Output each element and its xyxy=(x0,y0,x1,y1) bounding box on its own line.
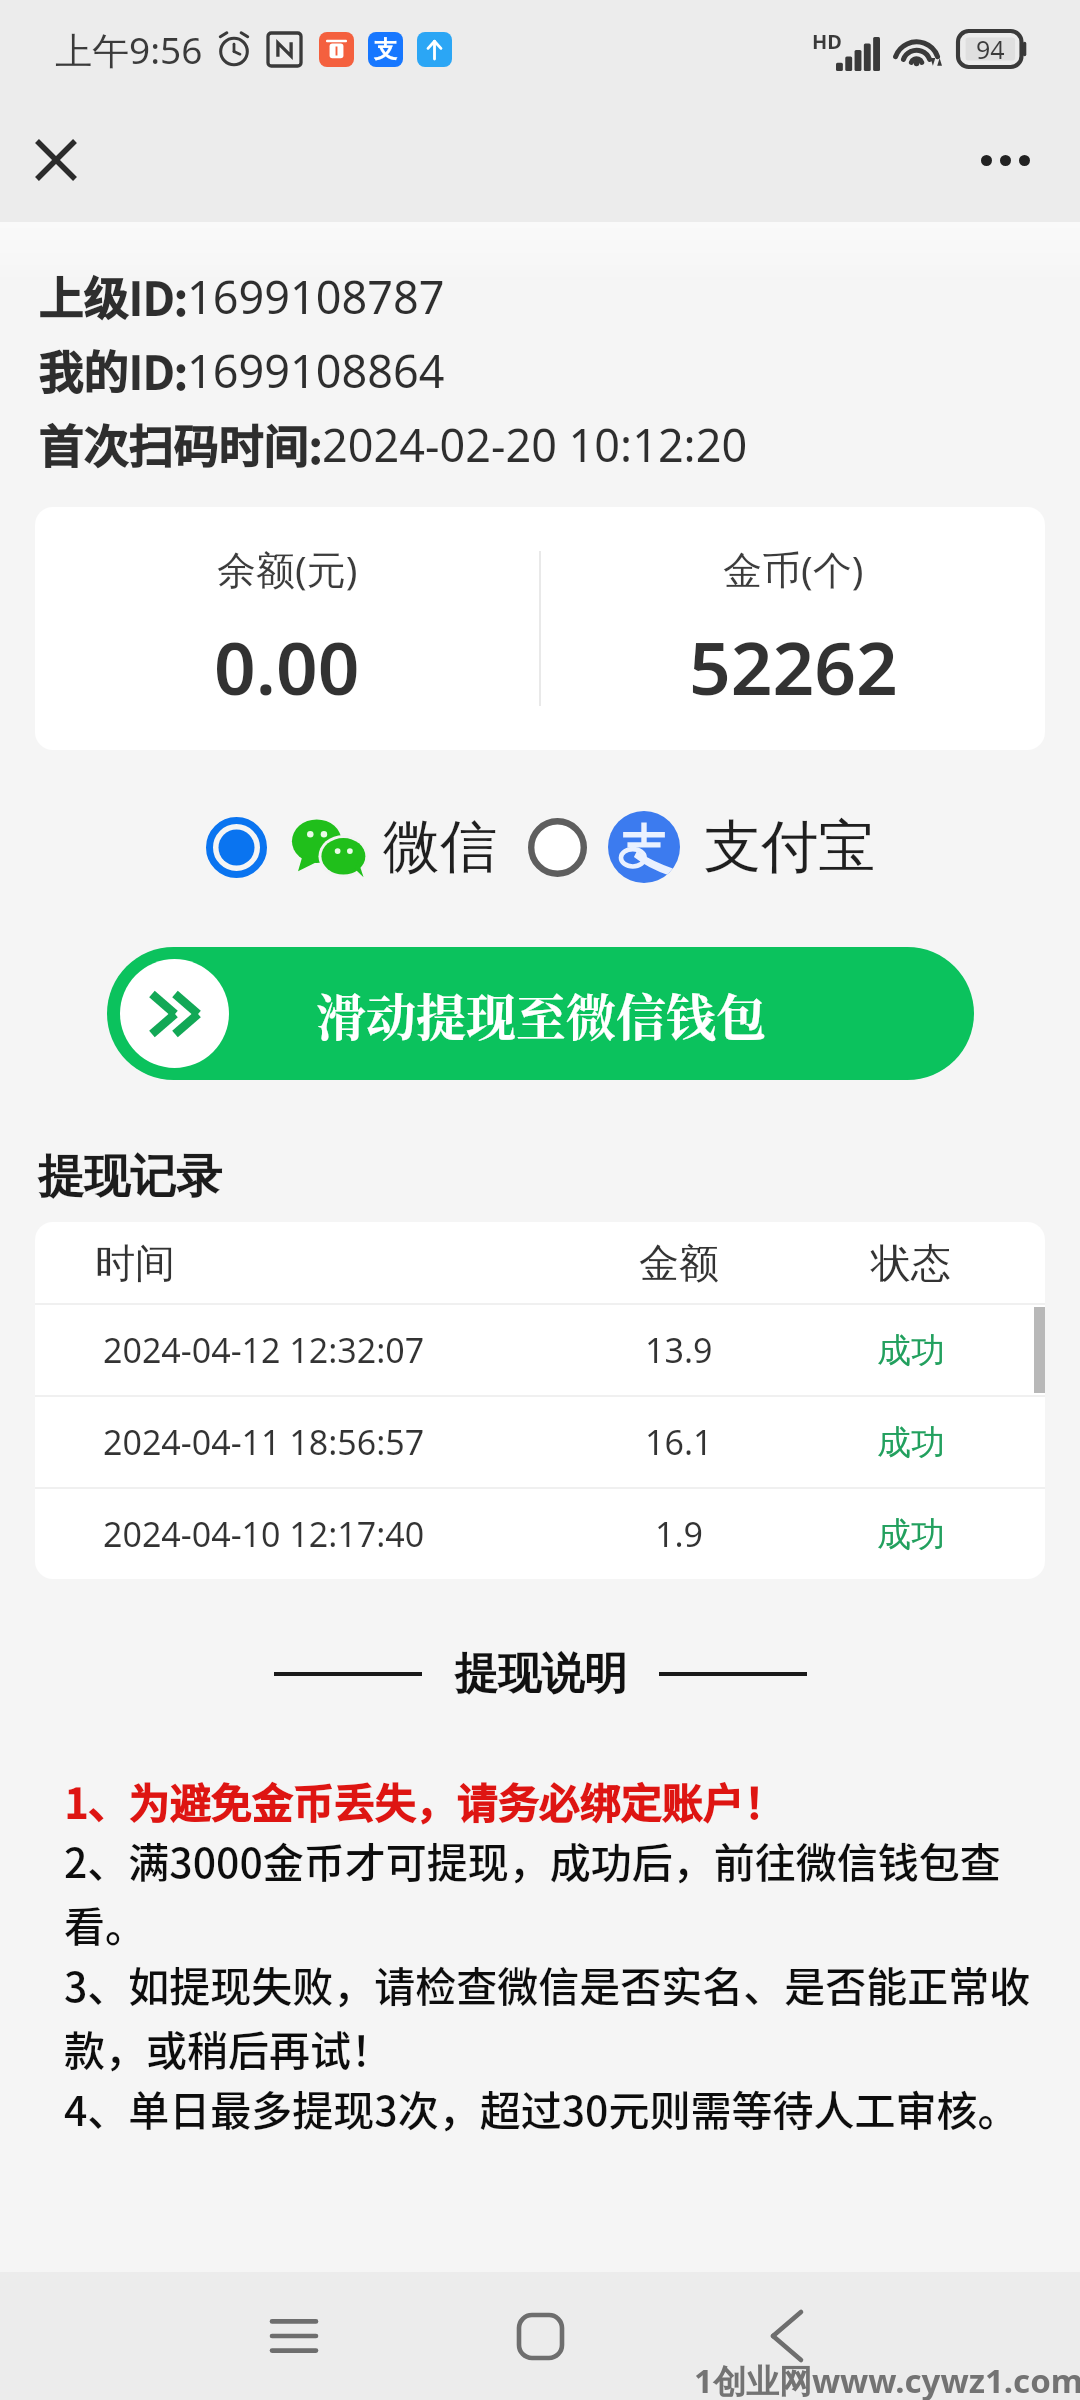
staticText: 我的ID: xyxy=(38,338,187,403)
staticText: 1699108787 xyxy=(187,266,445,327)
button[interactable]: 2024-04-11 18:56:57 xyxy=(35,1397,1045,1487)
staticText: 余额(元) xyxy=(217,542,358,595)
staticText: 支付宝 xyxy=(704,811,875,883)
button[interactable]: 2024-04-10 12:17:40 xyxy=(35,1489,1045,1579)
staticText: 4、单日最多提现3次，超过30元则需等待人工审核。 xyxy=(64,2078,1019,2137)
staticText: 2024-04-12 12:32:07 xyxy=(103,1327,425,1373)
staticText: 成功 xyxy=(877,1329,945,1372)
button[interactable]: More options xyxy=(950,105,1060,215)
staticText: 2024-04-10 12:17:40 xyxy=(103,1511,425,1557)
staticText: 首次扫码时间: xyxy=(38,412,322,477)
button[interactable]: Close xyxy=(1,105,111,215)
staticText: 2、满3000金币才可提现，成功后，前往微信钱包查看。 xyxy=(64,1830,1034,1954)
button[interactable]: 2024-04-12 12:32:07 xyxy=(35,1305,1045,1395)
staticText: 支 xyxy=(374,35,397,64)
staticText: 1创业网www.cywz1.com xyxy=(694,2358,1080,2400)
staticText: 16.1 xyxy=(645,1419,713,1465)
button[interactable]: Recents xyxy=(229,2272,359,2400)
staticText: HD xyxy=(812,28,842,55)
staticText: 提现说明 xyxy=(455,1647,627,1701)
staticText: 微信 xyxy=(383,811,497,883)
staticText: 3、如提现失败，请检查微信是否实名、是否能正常收款，或稍后再试！ xyxy=(64,1954,1034,2078)
staticText: 1.9 xyxy=(655,1511,704,1557)
staticText: 状态 xyxy=(871,1238,951,1288)
button[interactable]: Home xyxy=(475,2272,605,2400)
staticText: 金额 xyxy=(639,1238,719,1288)
button[interactable]: Back xyxy=(722,2272,852,2400)
button[interactable]: 支付宝 xyxy=(528,811,875,883)
button[interactable]: 时间 xyxy=(35,1222,1045,1303)
staticText: 上级ID: xyxy=(38,264,187,329)
staticText: 成功 xyxy=(877,1421,945,1464)
staticText: 提现记录 xyxy=(38,1148,222,1206)
staticText: 13.9 xyxy=(645,1327,713,1373)
button[interactable]: 微信 xyxy=(206,811,497,883)
staticText: 时间 xyxy=(95,1238,175,1288)
staticText: 金币(个) xyxy=(723,542,864,595)
staticText: 上午9:56 xyxy=(55,24,203,75)
button[interactable]: 滑动提现至微信钱包 xyxy=(107,947,974,1080)
staticText: 2024-02-20 10:12:20 xyxy=(322,414,748,475)
staticText: 2024-04-11 18:56:57 xyxy=(103,1419,425,1465)
staticText: 滑动提现至微信钱包 xyxy=(316,978,766,1050)
staticText: 1699108864 xyxy=(187,340,445,401)
staticText: 52262 xyxy=(689,617,898,716)
staticText: 1、为避免金币丢失，请务必绑定账户！ xyxy=(64,1771,785,1830)
staticText: 成功 xyxy=(877,1513,945,1556)
staticText: 94 xyxy=(976,32,1005,66)
staticText: 0.00 xyxy=(214,617,360,716)
